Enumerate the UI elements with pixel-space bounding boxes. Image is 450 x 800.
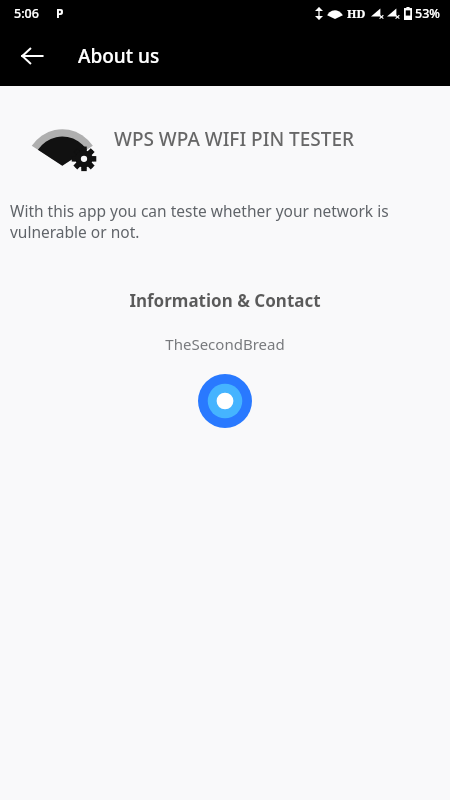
staticText: With this app you can teste whether your… — [10, 200, 436, 243]
staticText: TheSecondBread — [0, 334, 450, 354]
staticText: Information & Contact — [0, 289, 450, 312]
button[interactable]: Contact link — [198, 374, 252, 428]
button[interactable]: Back — [8, 32, 56, 80]
staticText: About us — [78, 43, 160, 69]
staticText: WPS WPA WIFI PIN TESTER — [114, 126, 355, 152]
staticText: HD — [347, 6, 366, 22]
staticText: 5:06 — [14, 5, 39, 22]
staticText: P — [56, 5, 64, 21]
staticText: 53% — [415, 5, 440, 22]
